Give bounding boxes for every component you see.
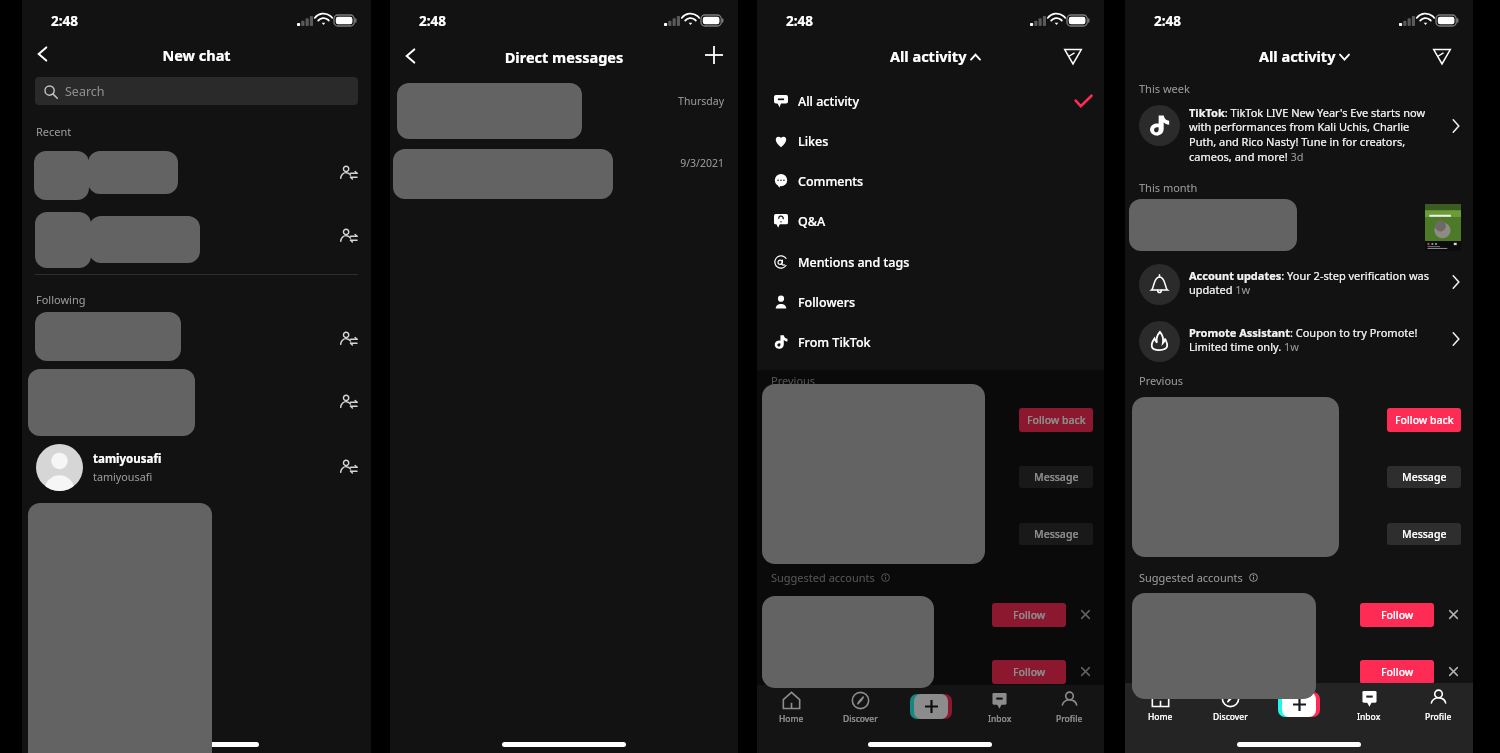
staticText: This month xyxy=(1139,180,1198,195)
staticText: Followers xyxy=(798,294,856,311)
button[interactable]: Discover xyxy=(826,685,895,733)
staticText: Likes xyxy=(798,133,829,150)
button[interactable]: Follow xyxy=(1360,660,1434,684)
button[interactable]: Follow xyxy=(1360,603,1434,627)
button[interactable]: Message xyxy=(1387,466,1461,488)
button[interactable]: Search xyxy=(35,77,358,105)
staticText: 2:48 xyxy=(419,12,446,30)
staticText: Inbox xyxy=(988,713,1012,725)
button[interactable]: Home xyxy=(1125,683,1195,731)
button[interactable] xyxy=(22,366,371,436)
button[interactable]: Follow xyxy=(992,603,1066,627)
staticText: This week xyxy=(1139,81,1190,96)
staticText: TikTok: TikTok LIVE New Year's Eve start… xyxy=(1189,105,1431,165)
staticText: Comments xyxy=(798,173,864,190)
button[interactable] xyxy=(22,210,371,268)
staticText: Follow back xyxy=(1027,413,1086,427)
staticText: Message xyxy=(1034,527,1079,541)
staticText: Q&A xyxy=(798,213,826,230)
button[interactable]: New message xyxy=(698,39,730,71)
staticText: From TikTok xyxy=(798,334,871,351)
button[interactable]: Back xyxy=(24,36,60,72)
staticText: All activity xyxy=(798,93,859,110)
staticText: tamiyousafi xyxy=(93,469,153,484)
staticText: All activity xyxy=(1259,46,1336,66)
button[interactable] xyxy=(757,315,1104,367)
staticText: Account updates: Your 2-step verificatio… xyxy=(821,268,1063,298)
button[interactable]: Discover xyxy=(1195,683,1265,731)
staticText: Mentions and tags xyxy=(798,254,910,271)
button[interactable]: Follow back xyxy=(1019,408,1093,432)
button[interactable] xyxy=(757,196,1104,252)
button[interactable] xyxy=(757,258,1104,310)
button[interactable]: Inbox xyxy=(965,685,1034,733)
button[interactable]: Back xyxy=(392,38,428,74)
button[interactable] xyxy=(22,147,371,203)
staticText: Direct messages xyxy=(390,47,738,67)
button[interactable]: Follow back xyxy=(1387,408,1461,432)
staticText: 2:48 xyxy=(1154,12,1181,30)
staticText: Suggested accounts xyxy=(1139,570,1243,585)
staticText: Previous xyxy=(1139,373,1184,388)
button[interactable]: Message xyxy=(1387,523,1461,545)
button[interactable]: Create xyxy=(1278,690,1320,718)
staticText: Follow xyxy=(1013,665,1046,679)
button[interactable]: Profile xyxy=(1403,683,1473,731)
staticText: Promote Assistant: Coupon to try Promote… xyxy=(821,325,1063,355)
staticText: Discover xyxy=(1213,711,1248,723)
staticText: This week xyxy=(771,81,822,96)
staticText: 2:48 xyxy=(786,12,813,30)
button[interactable]: Message xyxy=(1019,523,1093,545)
button[interactable]: Follow xyxy=(992,660,1066,684)
staticText: Follow xyxy=(1381,608,1414,622)
staticText: Following xyxy=(36,292,86,307)
button[interactable]: Profile xyxy=(1035,685,1104,733)
staticText: Inbox xyxy=(1357,711,1381,723)
button[interactable] xyxy=(390,80,738,142)
staticText: Search xyxy=(65,83,105,100)
button[interactable]: All activity xyxy=(1259,46,1349,66)
button[interactable] xyxy=(757,201,1104,241)
button[interactable]: All activity xyxy=(890,46,980,66)
staticText: TikTok: TikTok LIVE New Year's Eve start… xyxy=(821,105,1063,165)
staticText: Suggested accounts xyxy=(771,570,875,585)
button[interactable]: Filter xyxy=(1057,40,1089,72)
staticText: Recent xyxy=(36,124,72,139)
button[interactable] xyxy=(757,81,1104,121)
staticText: Follow back xyxy=(1395,413,1454,427)
staticText: Promote Assistant: Coupon to try Promote… xyxy=(1189,325,1431,355)
staticText: tamiyousafi xyxy=(93,451,162,467)
staticText: 9/3/2021 xyxy=(390,156,724,170)
button[interactable]: Message xyxy=(1019,466,1093,488)
button[interactable] xyxy=(757,161,1104,201)
staticText: 2:48 xyxy=(51,12,78,30)
button[interactable] xyxy=(1125,258,1473,310)
button[interactable] xyxy=(390,145,738,201)
button[interactable] xyxy=(1125,100,1473,166)
button[interactable]: Inbox xyxy=(1334,683,1404,731)
button[interactable]: Filter xyxy=(1426,40,1458,72)
staticText: All activity xyxy=(890,46,967,66)
staticText: New chat xyxy=(22,45,371,65)
button[interactable] xyxy=(757,242,1104,282)
button[interactable]: Home xyxy=(757,685,826,733)
staticText: Thursday xyxy=(390,94,724,108)
button[interactable] xyxy=(1125,315,1473,367)
staticText: Follow xyxy=(1381,665,1414,679)
staticText: Discover xyxy=(843,713,878,725)
staticText: Profile xyxy=(1425,711,1452,723)
button[interactable] xyxy=(757,121,1104,161)
button[interactable] xyxy=(22,442,371,494)
staticText: This month xyxy=(771,180,830,195)
button[interactable] xyxy=(757,100,1104,166)
staticText: Previous xyxy=(771,373,816,388)
button[interactable] xyxy=(22,310,371,365)
button[interactable]: Create xyxy=(910,692,952,720)
staticText: Home xyxy=(1148,711,1173,723)
button[interactable] xyxy=(757,282,1104,322)
button[interactable] xyxy=(757,322,1104,362)
staticText: Message xyxy=(1034,470,1079,484)
staticText: Follow xyxy=(1013,608,1046,622)
button[interactable] xyxy=(1125,196,1473,252)
staticText: Message xyxy=(1402,470,1447,484)
